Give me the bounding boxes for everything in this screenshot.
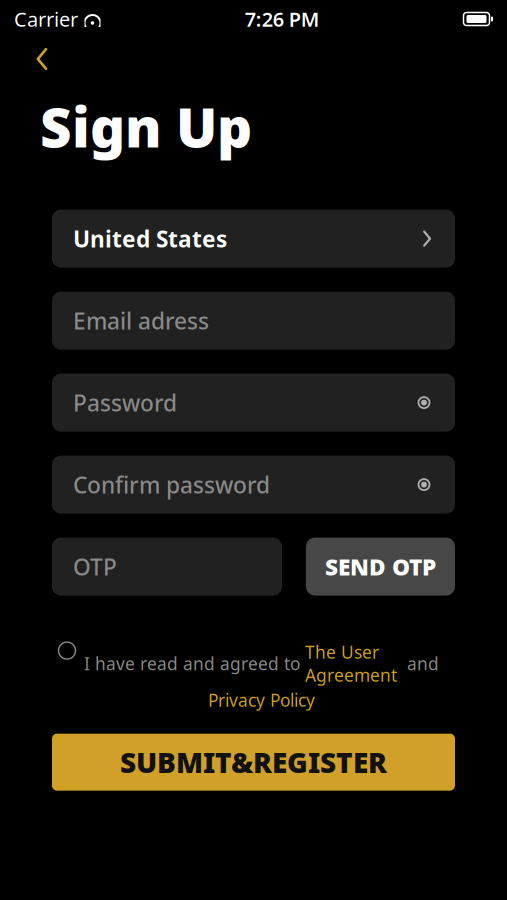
button[interactable]: SEND OTP — [306, 538, 455, 596]
staticText: Password — [73, 387, 177, 418]
staticText: Email adress — [73, 305, 209, 336]
staticText: and — [397, 652, 439, 675]
button[interactable]: OTP — [52, 538, 282, 596]
staticText: Carrier — [14, 6, 78, 32]
staticText: OTP — [73, 551, 117, 582]
staticText: Privacy Policy — [208, 689, 315, 712]
staticText: SUBMIT&REGISTER — [120, 744, 387, 781]
button[interactable]: Password — [52, 374, 455, 432]
staticText: Confirm password — [73, 469, 270, 500]
staticText: 7:26 PM — [245, 6, 320, 32]
staticText: The User Agreement — [305, 641, 397, 687]
button[interactable]: Email adress — [52, 292, 455, 350]
button[interactable]: United States — [52, 210, 455, 268]
staticText: Sign Up — [40, 90, 252, 163]
button[interactable]: The User Agreement — [305, 641, 397, 687]
staticText: United States — [73, 223, 227, 254]
staticText: I have read and agreed to — [84, 652, 305, 675]
button[interactable]: Privacy Policy — [208, 689, 315, 712]
button[interactable]: Confirm password — [52, 456, 455, 514]
button[interactable]: Agree to terms — [50, 634, 84, 668]
staticText: SEND OTP — [325, 551, 436, 582]
button[interactable]: SUBMIT&REGISTER — [52, 734, 455, 791]
button[interactable]: Back — [22, 42, 62, 76]
